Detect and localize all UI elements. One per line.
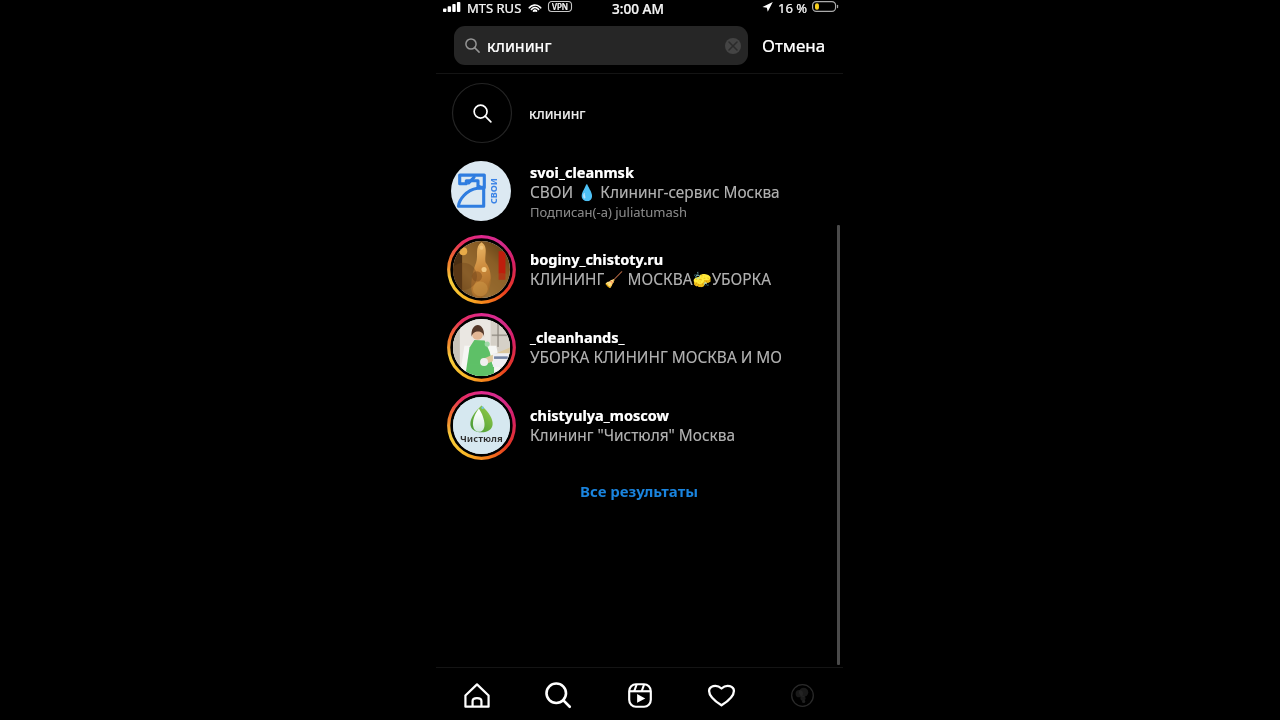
staticText: 16 % bbox=[778, 0, 808, 14]
staticText: клининг bbox=[487, 35, 552, 57]
staticText: УБОРКА КЛИНИНГ МОСКВА И МО bbox=[530, 347, 783, 368]
button[interactable]: Все результаты bbox=[436, 479, 843, 503]
staticText: КЛИНИНГ🧹 МОСКВА🧽УБОРКА bbox=[530, 269, 772, 290]
button[interactable]: Чистюля bbox=[436, 386, 843, 464]
button[interactable]: клининг bbox=[454, 26, 748, 65]
button[interactable]: СВОИ bbox=[436, 152, 843, 230]
staticText: Чистюля bbox=[460, 432, 503, 445]
button[interactable]: Профиль bbox=[778, 668, 826, 720]
button[interactable]: _cleanhands_ bbox=[436, 308, 843, 386]
staticText: svoi_cleanmsk bbox=[530, 162, 634, 182]
staticText: СВОИ 💧 Клининг-сервис Москва bbox=[530, 182, 780, 203]
staticText: _cleanhands_ bbox=[530, 327, 625, 347]
staticText: VPN bbox=[552, 1, 569, 12]
staticText: Все результаты bbox=[580, 481, 699, 501]
staticText: клининг bbox=[529, 104, 586, 123]
staticText: boginy_chistoty.ru bbox=[530, 249, 664, 269]
button[interactable]: Reels bbox=[616, 668, 664, 720]
button[interactable]: Поиск bbox=[534, 668, 582, 720]
staticText: Подписан(-а) juliatumash bbox=[530, 203, 688, 221]
button[interactable]: Нравится bbox=[697, 668, 745, 720]
button[interactable]: Отмена bbox=[762, 26, 838, 65]
staticText: СВОИ bbox=[487, 178, 499, 204]
staticText: chistyulya_moscow bbox=[530, 405, 669, 425]
button[interactable]: Очистить bbox=[725, 38, 741, 54]
button[interactable]: boginy_chistoty.ru bbox=[436, 230, 843, 308]
staticText: MTS RUS bbox=[467, 0, 522, 14]
button[interactable]: Главная bbox=[453, 668, 501, 720]
staticText: 3:00 AM bbox=[612, 0, 664, 14]
staticText: Клининг "Чистюля" Москва bbox=[530, 425, 735, 446]
staticText: Отмена bbox=[762, 34, 826, 57]
button[interactable]: клининг bbox=[436, 76, 843, 150]
